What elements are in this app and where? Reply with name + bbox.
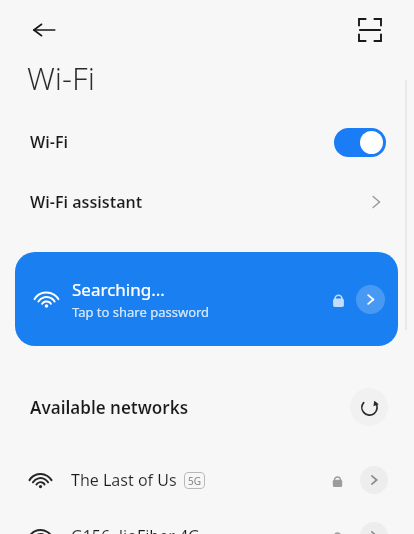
button[interactable]: Network details <box>360 466 388 494</box>
button[interactable]: Searching... <box>15 252 398 346</box>
button[interactable]: Network details <box>356 285 385 314</box>
staticText: G156_JioFiber 4G <box>71 525 200 534</box>
button[interactable]: Wi-Fi <box>0 115 414 169</box>
button[interactable]: Network details <box>360 522 388 534</box>
staticText: 5G <box>188 474 201 488</box>
staticText: Searching... <box>72 278 165 301</box>
staticText: Tap to share password <box>72 303 210 321</box>
button[interactable]: The Last of Us <box>0 452 414 508</box>
staticText: Wi-Fi <box>27 57 95 99</box>
button[interactable]: Wi-Fi assistant <box>0 176 414 228</box>
button[interactable]: G156_JioFiber 4G <box>0 508 414 534</box>
staticText: Available networks <box>30 396 189 419</box>
button[interactable]: Refresh <box>350 388 388 426</box>
staticText: The Last of Us <box>71 469 177 491</box>
button[interactable]: Back <box>18 4 70 56</box>
button[interactable]: Scan QR code <box>344 4 396 56</box>
staticText: Wi-Fi assistant <box>30 191 143 213</box>
staticText: Wi-Fi <box>30 131 69 153</box>
